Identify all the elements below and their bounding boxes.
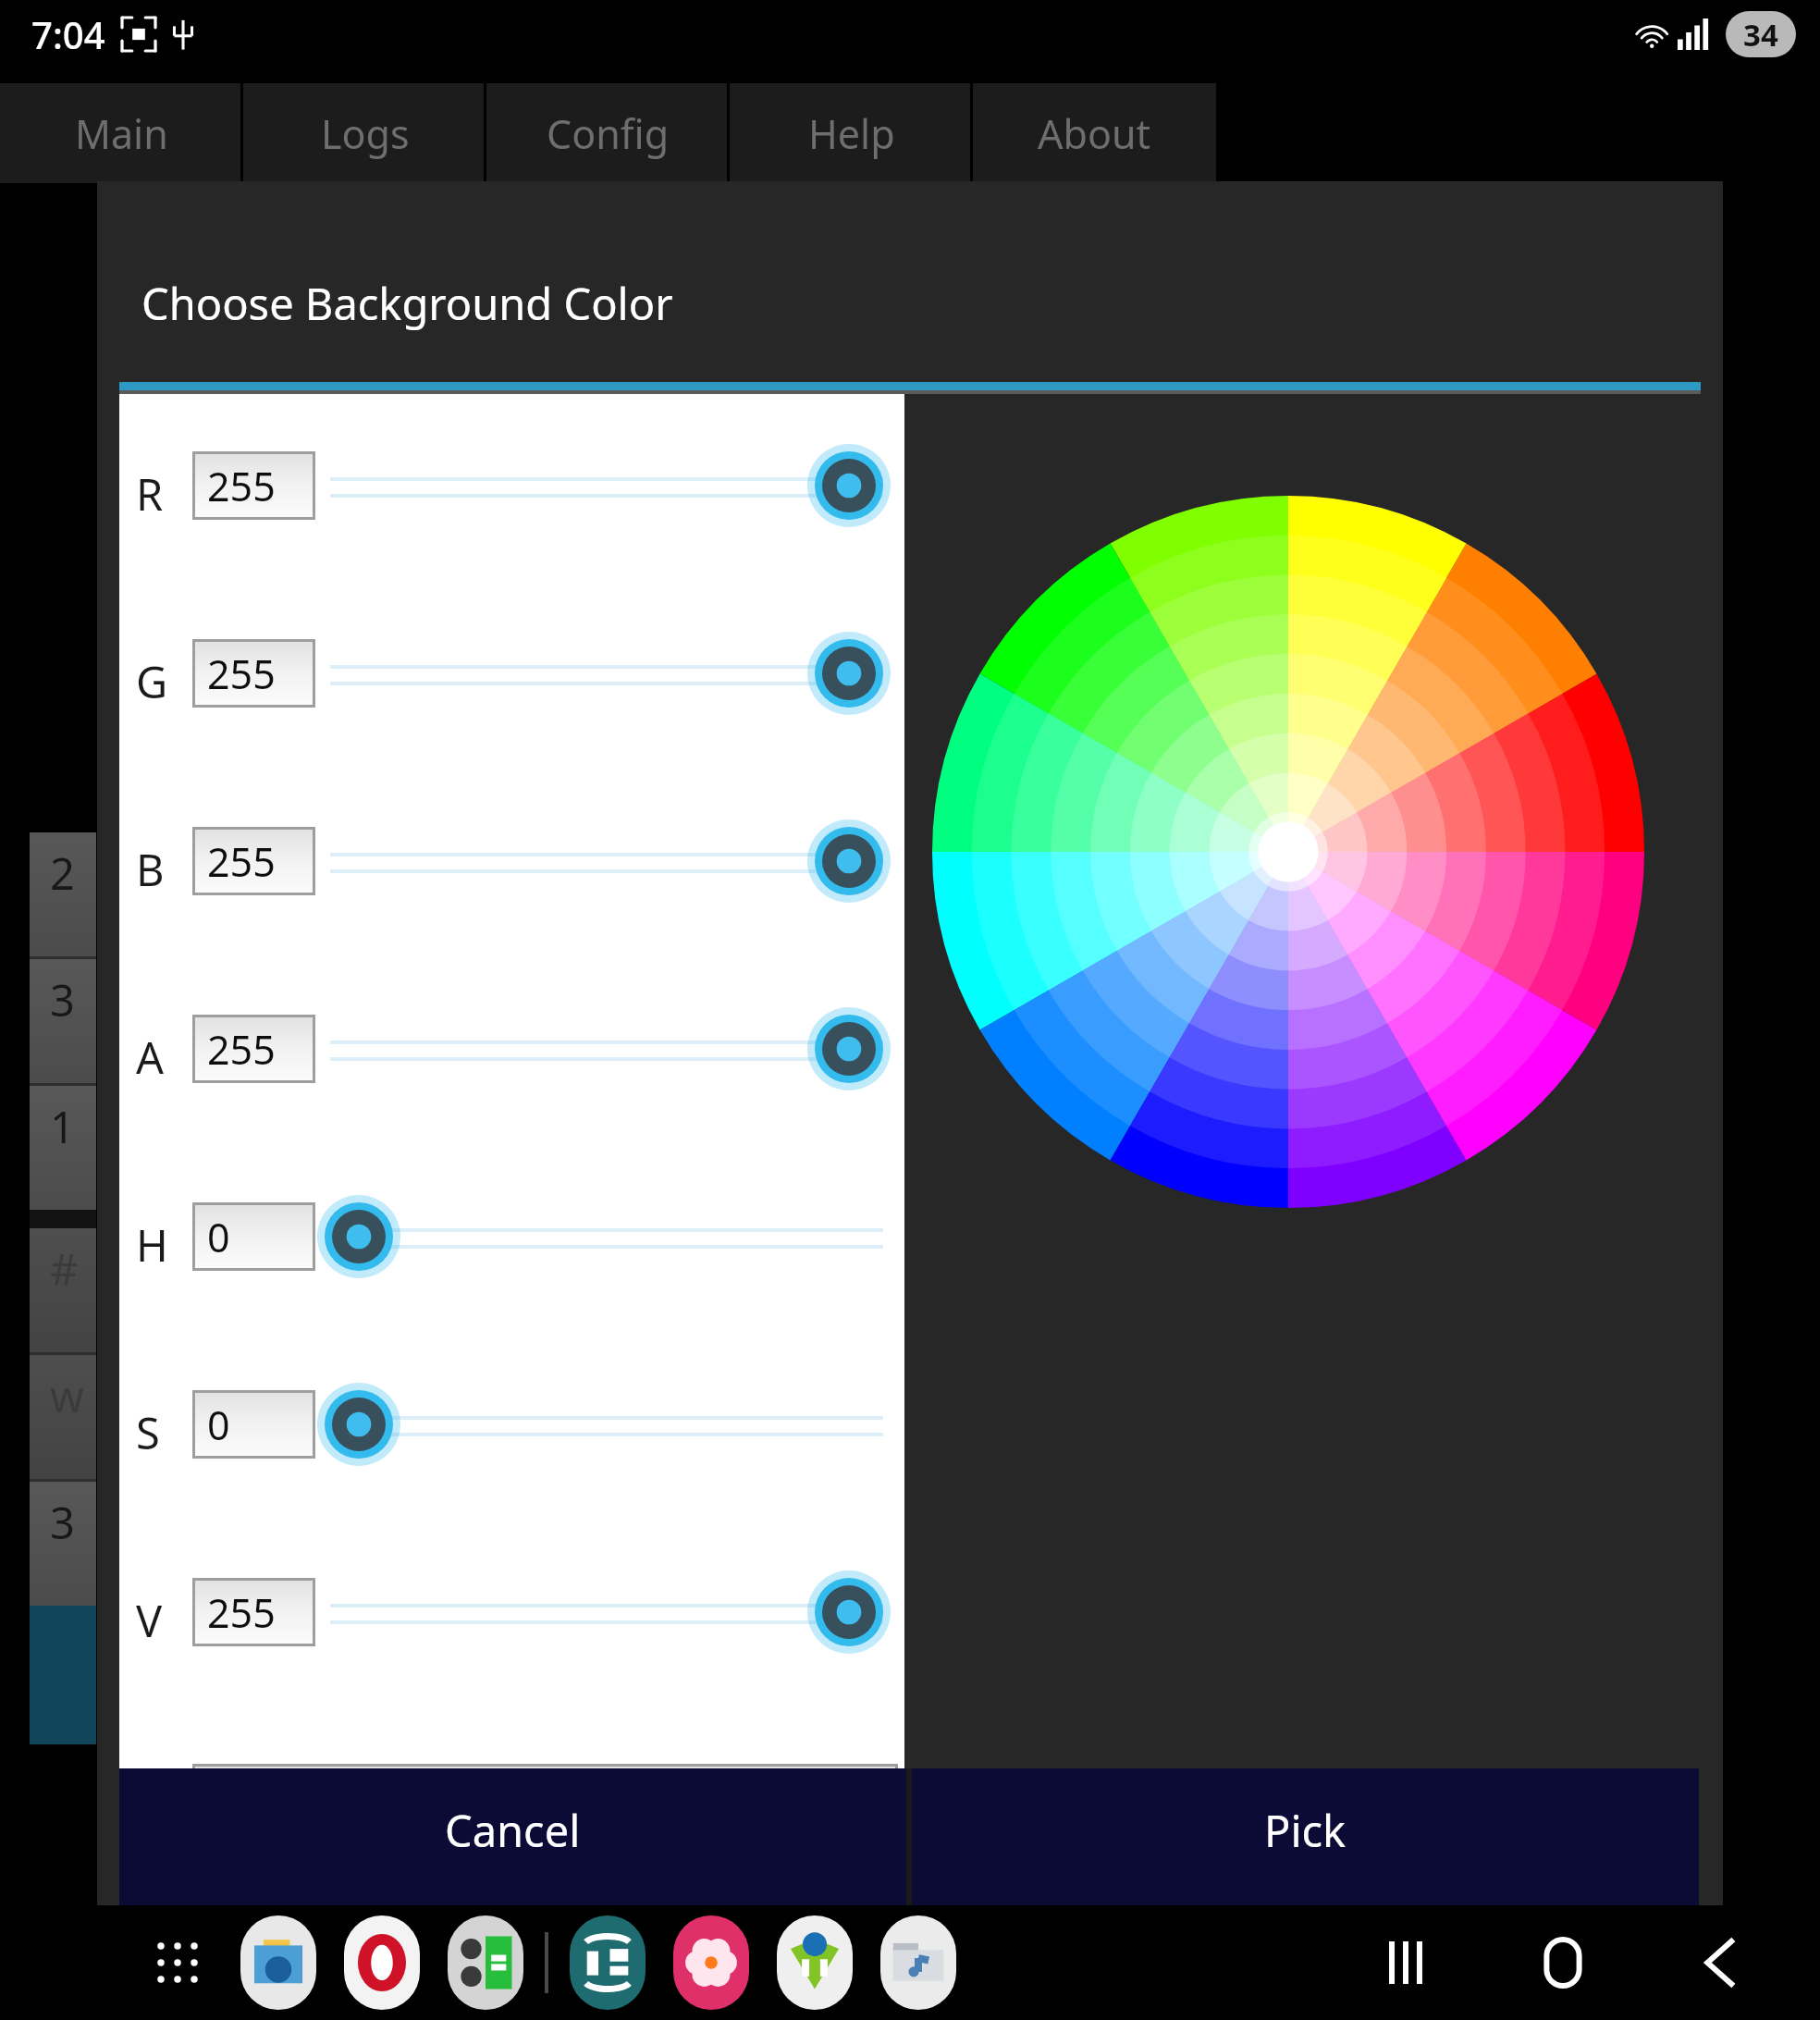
button[interactable]: 255 <box>192 639 315 708</box>
staticText: 0 <box>207 1398 230 1452</box>
button[interactable]: 30 <box>30 959 96 1083</box>
staticText: Logs <box>321 106 410 161</box>
button[interactable]: #00 <box>30 1228 96 1352</box>
button[interactable]: Cancel <box>119 1768 906 1944</box>
button[interactable]: Help <box>730 83 973 183</box>
staticText: Pick <box>1264 1801 1347 1860</box>
button[interactable]: 25 <box>30 832 96 956</box>
button[interactable]: 0 <box>192 1202 315 1271</box>
button[interactable]: About <box>973 83 1216 183</box>
staticText: G <box>136 652 168 711</box>
staticText: Config <box>547 106 670 161</box>
staticText: S <box>136 1403 160 1462</box>
button[interactable]: 255 <box>192 451 315 520</box>
button[interactable]: Home <box>1511 1911 1615 2014</box>
button[interactable]: Back <box>1668 1911 1772 2014</box>
staticText: 255 <box>207 1022 276 1077</box>
button[interactable]: Gallery <box>670 1914 752 2012</box>
button[interactable]: CX File Explorer <box>238 1914 319 2012</box>
button[interactable]: Pick <box>912 1768 1699 1944</box>
button[interactable]: G slider <box>325 622 883 724</box>
button[interactable]: #ffffffff <box>192 1764 898 1834</box>
button[interactable]: V slider <box>325 1561 883 1663</box>
staticText: 7:04 <box>31 9 105 59</box>
button[interactable]: Sync <box>567 1914 648 2012</box>
button[interactable]: A slider <box>325 998 883 1100</box>
staticText: Help <box>808 106 895 161</box>
staticText: 39 <box>50 1493 96 1552</box>
button[interactable]: Music folder <box>878 1914 959 2012</box>
staticText: B <box>136 840 165 899</box>
staticText: 0 <box>207 1210 230 1264</box>
staticText: About <box>1038 106 1151 161</box>
staticText: Cancel <box>445 1801 581 1860</box>
button[interactable]: 255 <box>192 1578 315 1646</box>
staticText: V <box>136 1591 163 1650</box>
staticText: 255 <box>207 647 276 701</box>
button[interactable]: Config <box>486 83 730 183</box>
button[interactable]: S slider <box>325 1373 883 1475</box>
staticText: A <box>136 1028 165 1087</box>
staticText: 10,2 <box>50 1097 96 1156</box>
staticText: 25 <box>50 844 96 903</box>
button[interactable]: B slider <box>325 810 883 912</box>
button[interactable]: 39 <box>30 1482 96 1606</box>
button[interactable]: Recents <box>1354 1911 1457 2014</box>
button[interactable]: Logs <box>243 83 486 183</box>
staticText: Choose Background Color <box>141 274 673 333</box>
button[interactable]: 255 <box>192 1015 315 1083</box>
staticText: whi <box>50 1366 96 1425</box>
button[interactable]: All apps <box>143 1928 212 1997</box>
button[interactable]: Colour wheel <box>932 496 1644 1208</box>
staticText: R <box>136 464 164 523</box>
staticText: Main <box>75 106 168 161</box>
staticText: 255 <box>207 1585 276 1640</box>
staticText: 30 <box>50 970 96 1029</box>
staticText: 255 <box>207 459 276 513</box>
staticText: 34 <box>1743 14 1778 55</box>
staticText: H <box>136 1215 168 1275</box>
button[interactable]: Opera <box>341 1914 423 2012</box>
button[interactable]: R slider <box>325 435 883 536</box>
staticText: #00 <box>50 1239 96 1299</box>
button[interactable]: 0 <box>192 1390 315 1459</box>
button[interactable]: 10,2 <box>30 1086 96 1210</box>
button[interactable]: H slider <box>325 1186 883 1287</box>
button[interactable]: whi <box>30 1355 96 1479</box>
button[interactable]: 255 <box>192 827 315 895</box>
button[interactable]: Calculator <box>445 1914 526 2012</box>
staticText: 255 <box>207 834 276 889</box>
button[interactable]: Main <box>0 83 243 183</box>
button[interactable]: Weather <box>774 1914 855 2012</box>
